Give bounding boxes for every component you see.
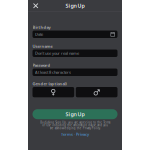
button[interactable]: Terms <box>61 132 73 137</box>
staticText: Date <box>35 32 43 37</box>
staticText: At least 8 characters <box>35 70 71 75</box>
button[interactable]: Don't use your real name <box>32 49 117 57</box>
staticText: Sign Up <box>65 111 84 118</box>
staticText: Sign Up <box>65 2 84 9</box>
button[interactable]: Female <box>32 87 74 97</box>
staticText: By clicking Sign Up, you are agreeing to… <box>40 121 110 130</box>
staticText: Terms <box>61 132 73 137</box>
staticText: Birthday <box>32 25 50 30</box>
staticText: Password <box>32 63 50 68</box>
button[interactable]: Privacy <box>76 132 89 137</box>
button[interactable]: Sign Up <box>32 109 117 119</box>
button[interactable]: At least 8 characters <box>32 68 117 76</box>
staticText: Username <box>32 44 52 49</box>
button[interactable]: Male <box>76 87 117 97</box>
button[interactable]: Date <box>32 30 117 38</box>
button[interactable]: Close <box>30 0 41 11</box>
staticText: Gender (optional) <box>32 81 66 86</box>
staticText: Privacy <box>76 132 89 137</box>
staticText: Don't use your real name <box>35 51 79 56</box>
staticText: · <box>73 132 76 137</box>
